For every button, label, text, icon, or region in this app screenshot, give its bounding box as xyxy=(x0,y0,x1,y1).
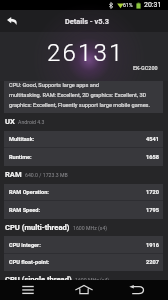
button[interactable]: RAM Speed: xyxy=(4,201,163,219)
staticText: 1795 xyxy=(146,207,159,214)
staticText: UX xyxy=(5,117,15,126)
staticText: Details - v5.3 xyxy=(65,17,109,26)
staticText: Android 4.3 xyxy=(18,119,45,125)
staticText: CPU (multi-thread) xyxy=(5,223,70,232)
button[interactable]: RAM Operation: xyxy=(4,184,163,201)
staticText: RAM xyxy=(5,170,22,179)
staticText: CPU (single thread) xyxy=(5,275,72,284)
button[interactable]: Recent apps xyxy=(0,280,56,300)
staticText: 1916 xyxy=(146,242,159,249)
staticText: 20:31 xyxy=(144,1,162,9)
staticText: RAM Speed: xyxy=(9,207,40,214)
button[interactable]: Multitask: xyxy=(4,131,163,148)
button[interactable]: CPU (multi-thread) xyxy=(0,219,168,236)
button[interactable]: Back xyxy=(112,280,168,300)
staticText: RAM Operation: xyxy=(9,189,49,196)
button[interactable]: Runtime: xyxy=(4,148,163,166)
staticText: 2207 xyxy=(146,259,159,266)
staticText: 1720 xyxy=(146,189,159,196)
staticText: CPU float-point: xyxy=(9,259,50,266)
staticText: CPU: Good, Supports large apps and multi… xyxy=(9,82,150,108)
staticText: CPU integer: xyxy=(9,242,41,249)
staticText: 1600 MHz (x4) xyxy=(73,225,108,231)
staticText: EK-GC200 xyxy=(133,65,158,71)
staticText: 1600 MHz (x4) xyxy=(75,277,110,283)
button[interactable]: CPU float-point: xyxy=(4,254,163,271)
staticText: 61% xyxy=(123,2,133,8)
button[interactable]: CPU (single thread) xyxy=(0,271,168,289)
staticText: Runtime: xyxy=(9,154,32,161)
staticText: 4541 xyxy=(146,136,159,143)
staticText: 1658 xyxy=(146,154,159,161)
staticText: Multitask: xyxy=(9,136,35,143)
button[interactable]: Home xyxy=(56,280,112,300)
button[interactable]: Back xyxy=(2,11,22,31)
button[interactable]: UX xyxy=(0,113,168,131)
staticText: 26131 xyxy=(47,39,125,67)
button[interactable]: RAM xyxy=(0,166,168,184)
staticText: 640.0 / 1723.3 MB xyxy=(25,172,68,178)
button[interactable]: CPU integer: xyxy=(4,236,163,254)
